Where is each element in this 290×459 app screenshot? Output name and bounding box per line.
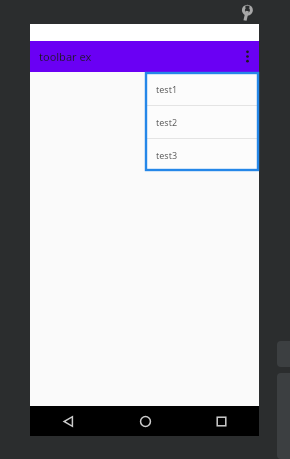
button[interactable]: test1	[146, 73, 258, 105]
button[interactable]: Back	[30, 406, 107, 436]
button[interactable]: Home	[107, 406, 183, 436]
button[interactable]: More options	[235, 41, 259, 72]
button[interactable]: test2	[146, 106, 258, 138]
staticText: test3	[156, 149, 178, 161]
staticText: toolbar ex	[39, 49, 92, 64]
button[interactable]: Recent apps	[183, 406, 259, 436]
button[interactable]: Settings	[236, 4, 256, 24]
button[interactable]: test3	[146, 139, 258, 170]
staticText: test2	[156, 116, 178, 128]
staticText: test1	[156, 83, 178, 95]
